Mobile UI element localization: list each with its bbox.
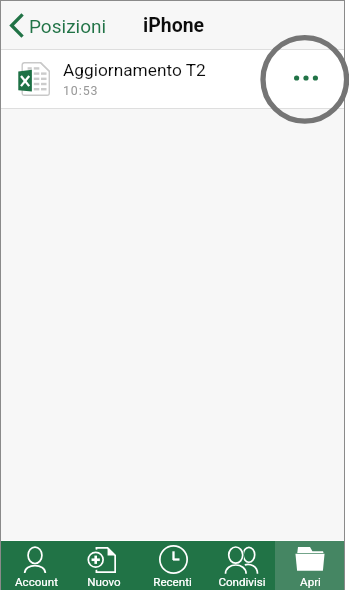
staticText: Aggiornamento T2 <box>63 60 206 80</box>
staticText: Apri <box>300 575 321 589</box>
staticText: Recenti <box>153 575 192 589</box>
button[interactable]: Posizioni <box>1 6 117 45</box>
staticText: Posizioni <box>29 15 107 37</box>
button[interactable]: Apri <box>275 541 344 590</box>
button[interactable]: Account <box>1 541 69 590</box>
staticText: 10:53 <box>63 83 99 98</box>
button[interactable]: Recenti <box>137 541 206 590</box>
staticText: iPhone <box>143 14 205 37</box>
button[interactable]: Condivisi <box>206 541 275 590</box>
button[interactable]: Nuovo <box>69 541 137 590</box>
staticText: Account <box>15 575 58 589</box>
button[interactable]: Aggiornamento T2 <box>1 50 344 109</box>
staticText: Nuovo <box>87 575 121 589</box>
button[interactable]: More options <box>284 56 328 100</box>
staticText: Condivisi <box>218 575 266 589</box>
